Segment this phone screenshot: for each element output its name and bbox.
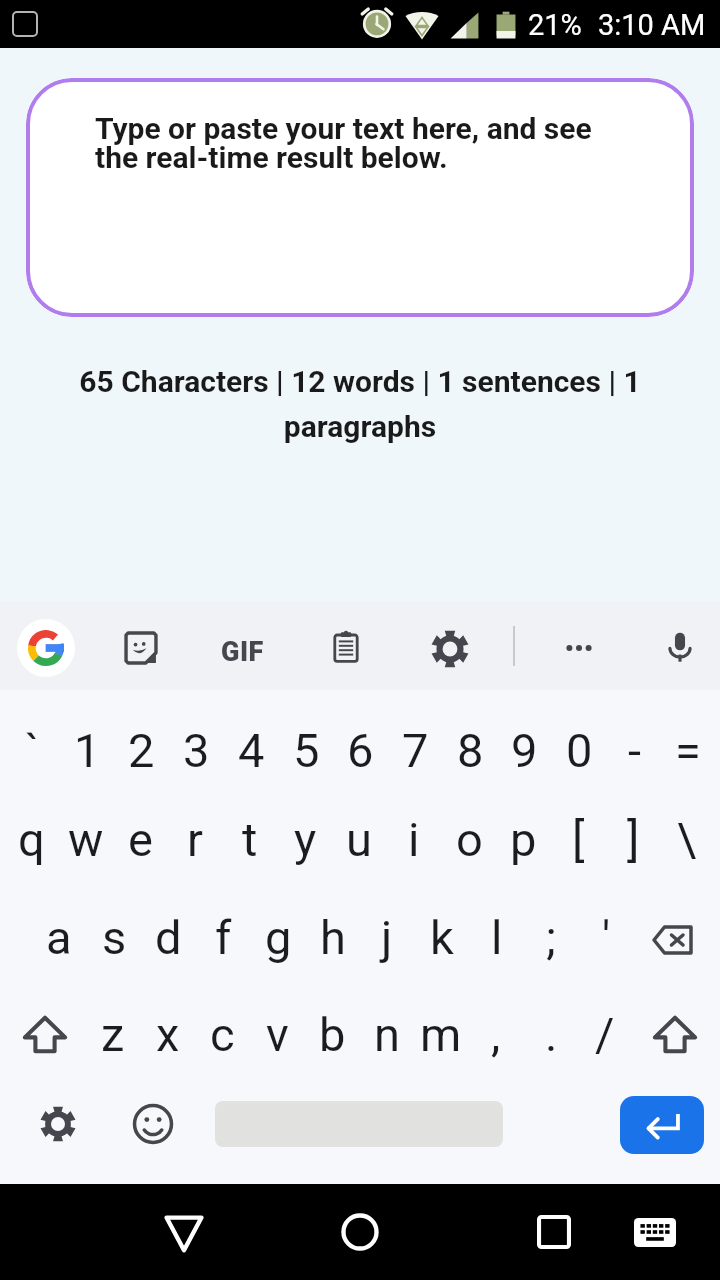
staticText: ,: [491, 1007, 501, 1062]
staticText: /: [595, 1007, 615, 1062]
button[interactable]: g: [251, 904, 305, 970]
button[interactable]: a: [32, 904, 86, 970]
button[interactable]: ]: [606, 806, 660, 872]
button[interactable]: 1: [60, 717, 114, 783]
button[interactable]: 0: [552, 717, 606, 783]
staticText: x: [156, 1007, 180, 1062]
button[interactable]: i: [387, 806, 441, 872]
button[interactable]: ': [579, 904, 633, 970]
button[interactable]: d: [141, 904, 195, 970]
staticText: 4: [238, 723, 265, 778]
button[interactable]: k: [415, 904, 469, 970]
staticText: z: [101, 1007, 125, 1062]
staticText: 9: [511, 723, 538, 778]
button[interactable]: y: [278, 806, 332, 872]
button[interactable]: Back: [156, 1204, 212, 1260]
button[interactable]: More: [551, 620, 607, 676]
staticText: r: [187, 812, 203, 867]
button[interactable]: t: [223, 806, 277, 872]
button[interactable]: h: [306, 904, 360, 970]
button[interactable]: GIF: [214, 624, 270, 680]
button[interactable]: 7: [388, 717, 442, 783]
button[interactable]: Stickers: [113, 620, 169, 676]
staticText: p: [510, 812, 537, 867]
button[interactable]: 6: [333, 717, 387, 783]
button[interactable]: 2: [114, 717, 168, 783]
button[interactable]: p: [496, 806, 550, 872]
button[interactable]: l: [470, 904, 524, 970]
button[interactable]: 4: [224, 717, 278, 783]
staticText: ': [602, 910, 611, 965]
button[interactable]: v: [250, 1001, 304, 1067]
button[interactable]: u: [332, 806, 386, 872]
button[interactable]: Shift: [647, 1007, 703, 1063]
staticText: 21%: [528, 8, 582, 42]
button[interactable]: b: [305, 1001, 359, 1067]
button[interactable]: s: [87, 904, 141, 970]
button[interactable]: n: [360, 1001, 414, 1067]
button[interactable]: w: [59, 806, 113, 872]
button[interactable]: ;: [524, 904, 578, 970]
staticText: 1: [74, 723, 101, 778]
staticText: k: [430, 910, 454, 965]
staticText: [: [572, 812, 585, 867]
button[interactable]: Recent apps: [526, 1204, 582, 1260]
button[interactable]: Emoji: [128, 1099, 178, 1149]
staticText: ]: [627, 812, 640, 867]
button[interactable]: `: [5, 717, 59, 783]
staticText: a: [46, 910, 72, 965]
button[interactable]: .: [524, 1001, 578, 1067]
button[interactable]: Google: [17, 619, 75, 677]
button[interactable]: -: [607, 717, 661, 783]
button[interactable]: =: [661, 717, 715, 783]
button[interactable]: Type or paste your text here, and see th…: [26, 78, 694, 317]
staticText: -: [628, 723, 641, 778]
button[interactable]: o: [442, 806, 496, 872]
staticText: v: [266, 1007, 289, 1062]
staticText: t: [242, 812, 258, 867]
button[interactable]: Clipboard: [318, 619, 374, 675]
staticText: 3: [183, 723, 210, 778]
staticText: w: [68, 812, 104, 867]
button[interactable]: m: [414, 1001, 468, 1067]
staticText: \: [677, 812, 697, 867]
button[interactable]: 3: [169, 717, 223, 783]
staticText: 3:10 AM: [598, 8, 706, 42]
button[interactable]: 5: [279, 717, 333, 783]
staticText: c: [210, 1007, 235, 1062]
button[interactable]: 9: [497, 717, 551, 783]
button[interactable]: [: [551, 806, 605, 872]
button[interactable]: f: [196, 904, 250, 970]
button[interactable]: x: [141, 1001, 195, 1067]
button[interactable]: Settings: [33, 1099, 83, 1149]
staticText: j: [381, 910, 393, 965]
staticText: `: [25, 723, 40, 778]
staticText: o: [456, 812, 483, 867]
staticText: Type or paste your text here, and see th…: [95, 111, 605, 175]
button[interactable]: \: [660, 806, 714, 872]
button[interactable]: Voice input: [652, 619, 708, 675]
button[interactable]: Shift: [17, 1007, 73, 1063]
button[interactable]: c: [195, 1001, 249, 1067]
button[interactable]: e: [113, 806, 167, 872]
staticText: l: [491, 910, 503, 965]
button[interactable]: Backspace: [645, 912, 701, 968]
staticText: n: [374, 1007, 400, 1062]
staticText: .: [545, 1007, 558, 1062]
button[interactable]: /: [578, 1001, 632, 1067]
button[interactable]: r: [168, 806, 222, 872]
staticText: h: [320, 910, 346, 965]
button[interactable]: z: [86, 1001, 140, 1067]
staticText: d: [155, 910, 182, 965]
button[interactable]: 8: [443, 717, 497, 783]
button[interactable]: ,: [469, 1001, 523, 1067]
staticText: s: [102, 910, 127, 965]
button[interactable]: q: [4, 806, 58, 872]
button[interactable]: Home: [332, 1204, 388, 1260]
button[interactable]: j: [360, 904, 414, 970]
button[interactable]: Enter: [620, 1096, 704, 1154]
button[interactable]: Show keyboard: [627, 1204, 683, 1260]
button[interactable]: Settings: [422, 621, 478, 677]
staticText: 8: [457, 723, 484, 778]
